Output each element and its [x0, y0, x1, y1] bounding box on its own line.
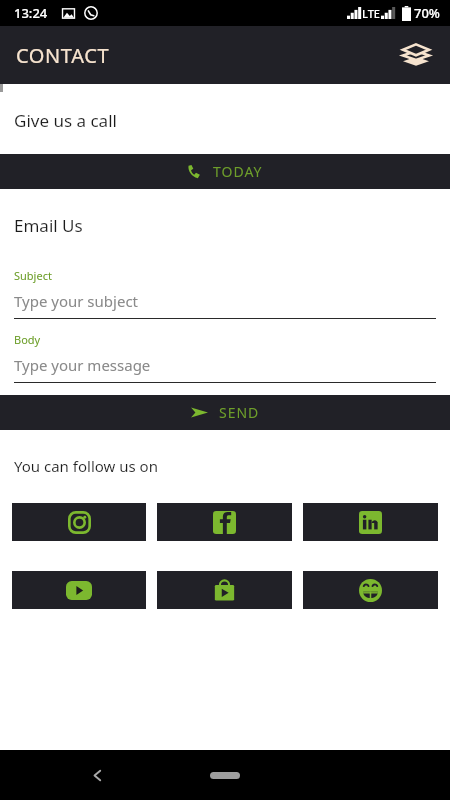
button[interactable]: Instagram: [12, 503, 146, 541]
button[interactable]: Back: [76, 754, 118, 796]
button[interactable]: Facebook: [157, 503, 292, 541]
staticText: TODAY: [213, 162, 263, 181]
button[interactable]: YouTube: [12, 571, 146, 609]
staticText: Type your subject: [14, 291, 138, 311]
staticText: SEND: [219, 403, 260, 422]
button[interactable]: SEND: [0, 395, 450, 430]
button[interactable]: Play Store: [157, 571, 292, 609]
staticText: Give us a call: [14, 109, 117, 132]
staticText: Email Us: [14, 214, 83, 237]
button[interactable]: Home: [202, 764, 248, 786]
staticText: 70%: [414, 4, 440, 22]
staticText: Type your message: [14, 355, 151, 375]
staticText: Body: [14, 332, 41, 347]
staticText: CONTACT: [16, 42, 110, 69]
staticText: LTE: [362, 6, 380, 21]
staticText: 13:24: [14, 4, 48, 22]
staticText: Subject: [14, 268, 52, 283]
staticText: You can follow us on: [14, 456, 158, 476]
button[interactable]: Layers: [394, 33, 438, 77]
button[interactable]: Smiley: [303, 571, 438, 609]
button[interactable]: TODAY: [0, 154, 450, 189]
button[interactable]: LinkedIn: [303, 503, 438, 541]
